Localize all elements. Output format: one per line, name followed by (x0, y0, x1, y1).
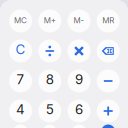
staticText: MC (14, 16, 27, 25)
staticText: M- (73, 16, 84, 25)
button[interactable]: 5 (38, 99, 61, 122)
button[interactable]: 6 (67, 99, 90, 122)
button[interactable]: Divide (38, 39, 61, 62)
button[interactable]: 2 (43, 124, 57, 128)
button[interactable]: M- (67, 9, 90, 32)
staticText: 8 (46, 71, 54, 87)
button[interactable]: Plus (97, 99, 120, 122)
button[interactable]: C (9, 39, 32, 62)
staticText: C (16, 41, 26, 57)
staticText: M+ (44, 16, 56, 25)
button[interactable]: Delete (97, 39, 120, 62)
button[interactable]: Minus (97, 69, 120, 92)
staticText: MR (102, 16, 114, 25)
staticText: 7 (17, 71, 25, 87)
button[interactable]: Multiply (67, 39, 90, 62)
button[interactable]: MC (9, 9, 32, 32)
button[interactable]: 1 (14, 124, 28, 128)
staticText: 5 (46, 101, 54, 117)
button[interactable]: MR (97, 9, 120, 32)
button[interactable]: 4 (9, 99, 32, 122)
button[interactable]: M+ (38, 9, 61, 32)
staticText: 9 (75, 71, 83, 87)
staticText: 4 (16, 101, 25, 117)
button[interactable]: 7 (9, 69, 32, 92)
button[interactable]: 9 (67, 69, 90, 92)
button[interactable]: Equals (101, 124, 115, 128)
staticText: 6 (75, 101, 83, 117)
button[interactable]: 3 (72, 124, 86, 128)
button[interactable]: 8 (38, 69, 61, 92)
